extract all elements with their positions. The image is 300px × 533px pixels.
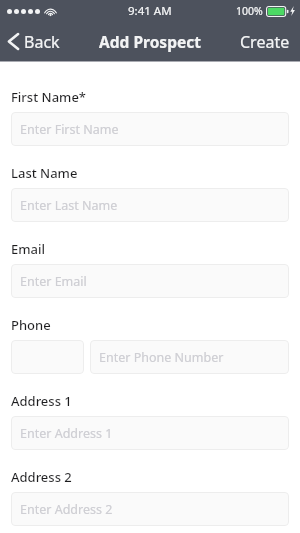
button[interactable]: Enter Address 1 (11, 416, 289, 450)
staticText: Enter Last Name (20, 197, 118, 214)
staticText: Enter Address 2 (20, 501, 113, 518)
staticText: 9:41 AM (128, 3, 172, 19)
other: Back (8, 33, 19, 50)
staticText: Create (240, 31, 290, 53)
button[interactable]: Create (230, 22, 300, 61)
button[interactable]: Country code (11, 340, 84, 374)
staticText: Phone (11, 316, 51, 334)
button[interactable]: Enter Last Name (11, 188, 289, 222)
staticText: Back (24, 31, 60, 53)
staticText: Add Prospect (99, 31, 201, 52)
staticText: First Name* (11, 88, 86, 106)
button[interactable]: Enter First Name (11, 112, 289, 146)
staticText: Last Name (11, 164, 78, 182)
button[interactable]: Enter Address 2 (11, 492, 289, 526)
staticText: 100% (236, 4, 263, 18)
staticText: Address 1 (11, 392, 72, 410)
staticText: Email (11, 240, 46, 258)
button[interactable]: Back (0, 22, 70, 61)
staticText: Enter Phone Number (99, 349, 224, 366)
staticText: Enter Address 1 (20, 425, 113, 442)
button[interactable]: Enter Email (11, 264, 289, 298)
staticText: Enter Email (20, 273, 87, 290)
staticText: Enter First Name (20, 121, 119, 138)
button[interactable]: Enter Phone Number (90, 340, 289, 374)
staticText: Address 2 (11, 468, 72, 486)
